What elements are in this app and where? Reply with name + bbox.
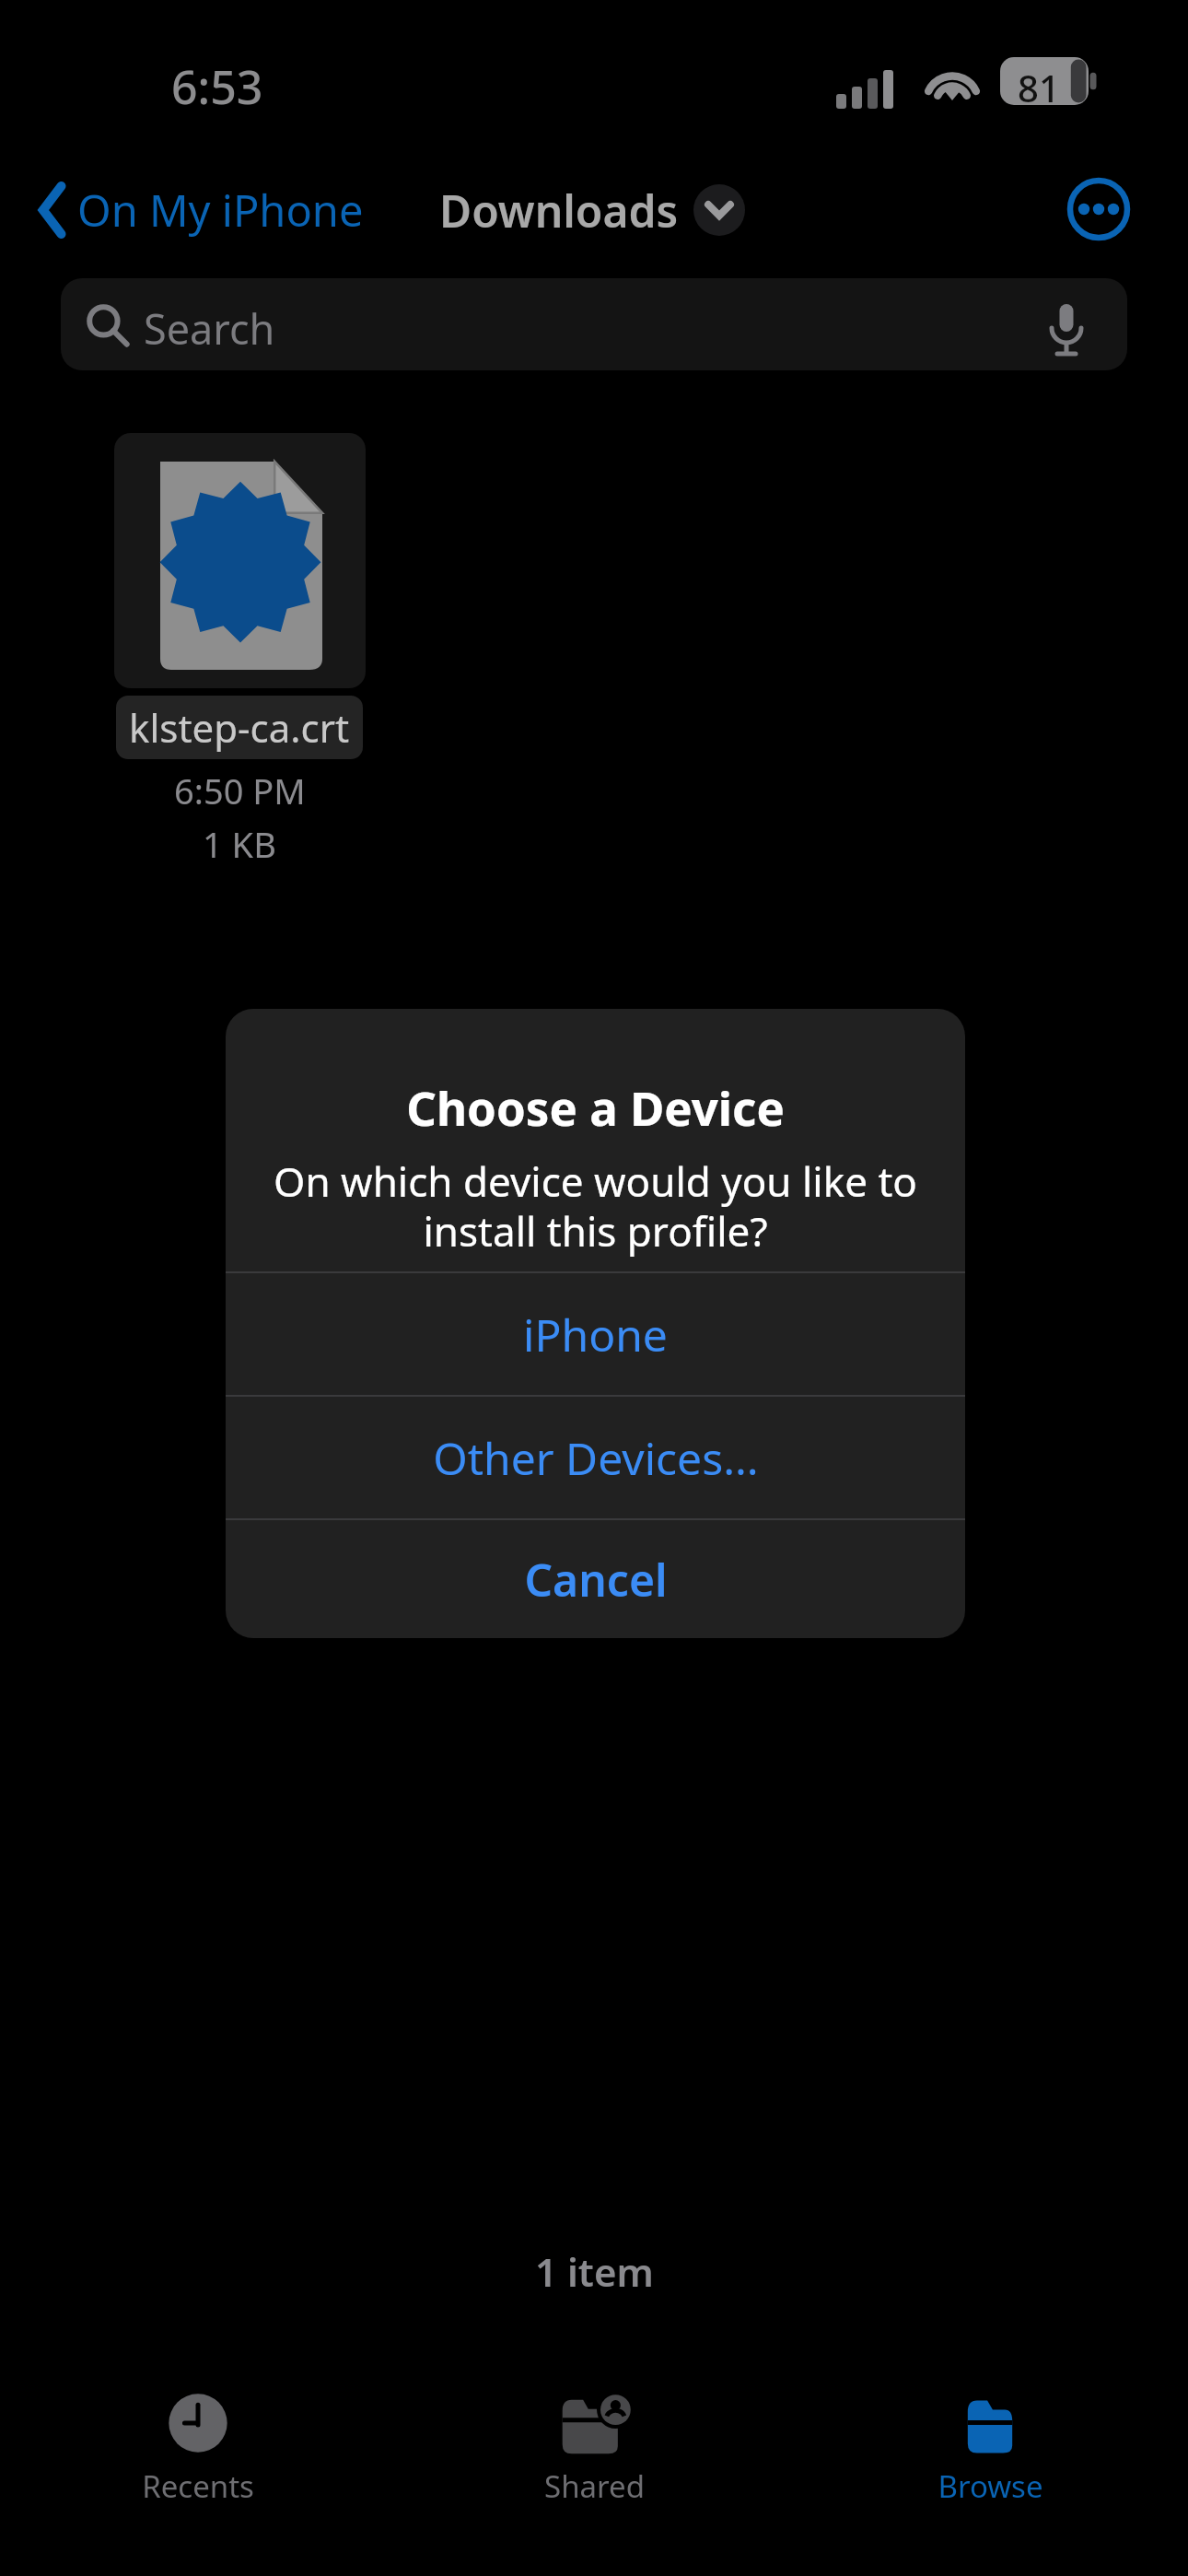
staticText: On which device would you like to instal… — [257, 1153, 934, 1259]
staticText: 1 item — [535, 2245, 654, 2298]
button[interactable]: Recents — [0, 2377, 396, 2524]
staticText: 81 — [1018, 63, 1060, 112]
staticText: klstep-ca.crt — [129, 701, 350, 754]
button[interactable]: iPhone — [226, 1273, 965, 1395]
button[interactable]: Cancel — [226, 1520, 965, 1638]
staticText: 6:50 PM — [174, 767, 306, 814]
staticText: On My iPhone — [77, 181, 364, 240]
staticText: Cancel — [524, 1550, 668, 1610]
staticText: Choose a Device — [406, 1075, 785, 1139]
button[interactable]: klstep-ca.crt — [55, 433, 424, 868]
button[interactable]: More options — [1066, 176, 1132, 242]
button[interactable]: Search — [61, 278, 1127, 370]
button[interactable]: Downloads — [439, 173, 745, 247]
staticText: Browse — [938, 2465, 1043, 2507]
button[interactable]: Other Devices... — [226, 1397, 965, 1518]
button[interactable]: On My iPhone — [33, 170, 367, 250]
staticText: Search — [144, 300, 275, 357]
staticText: Downloads — [439, 181, 679, 240]
staticText: Recents — [142, 2465, 254, 2507]
staticText: 6:53 — [171, 55, 263, 118]
button[interactable]: Browse — [792, 2377, 1188, 2524]
staticText: Other Devices... — [433, 1428, 759, 1488]
button[interactable]: Shared — [396, 2377, 792, 2524]
other: Dictate — [1044, 302, 1089, 346]
staticText: 1 KB — [203, 820, 276, 868]
staticText: Shared — [544, 2465, 645, 2507]
staticText: iPhone — [523, 1305, 668, 1364]
